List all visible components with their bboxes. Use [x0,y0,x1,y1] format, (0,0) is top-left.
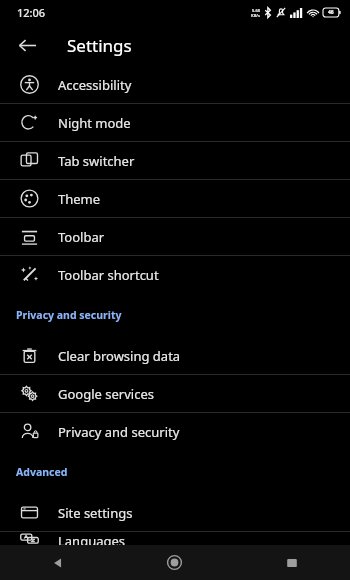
button[interactable]: Recent apps [233,545,350,580]
staticText: KB/s [251,13,260,18]
button[interactable]: Theme [0,180,350,217]
staticText: Google services [58,385,154,403]
button[interactable]: Tab switcher [0,142,350,179]
staticText: Tab switcher [58,152,135,170]
staticText: Clear browsing data [58,347,181,365]
staticText: Theme [58,190,101,208]
button[interactable]: Languages [0,532,350,545]
staticText: Toolbar shortcut [58,266,159,284]
button[interactable]: Site settings [0,494,350,531]
staticText: Privacy and security [16,308,122,322]
button[interactable]: Back [0,545,116,580]
button[interactable]: Night mode [0,104,350,141]
staticText: Night mode [58,114,131,132]
staticText: 12:06 [17,5,46,20]
staticText: Site settings [58,504,133,522]
staticText: Accessibility [58,76,132,94]
button[interactable]: Home [116,545,233,580]
staticText: Advanced [16,465,68,479]
staticText: Privacy and security [58,423,180,441]
staticText: Toolbar [58,228,105,246]
button[interactable]: Google services [0,375,350,412]
button[interactable]: Back [11,29,43,61]
button[interactable]: Accessibility [0,66,350,103]
staticText: 46 [328,9,334,16]
button[interactable]: Clear browsing data [0,337,350,374]
button[interactable]: Toolbar [0,218,350,255]
button[interactable]: Toolbar shortcut [0,256,350,293]
staticText: 5.68 [252,8,260,13]
staticText: Settings [67,34,132,57]
staticText: Languages [58,532,126,545]
button[interactable]: Privacy and security [0,413,350,450]
